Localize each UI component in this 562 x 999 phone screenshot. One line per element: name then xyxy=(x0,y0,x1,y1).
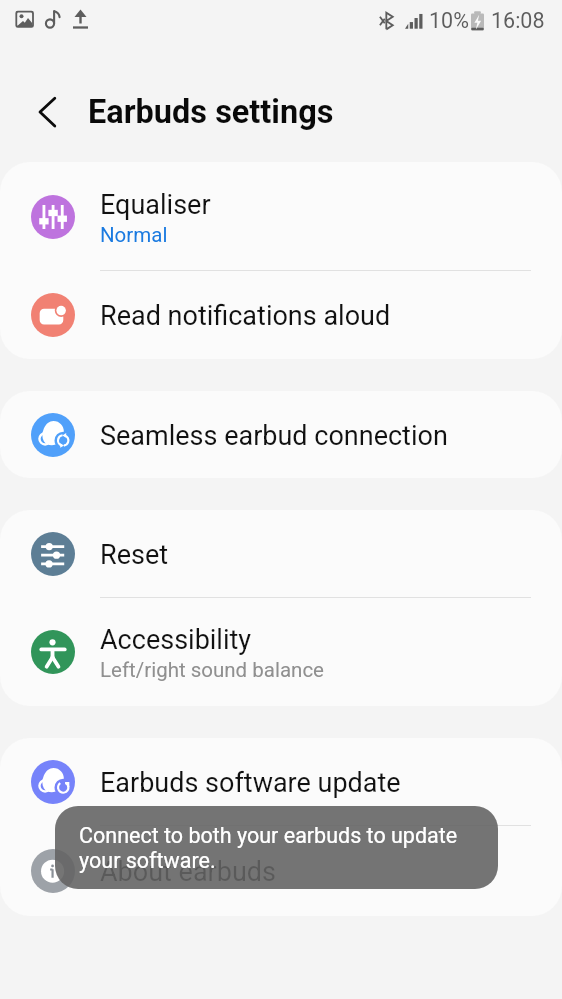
staticText: About earbuds xyxy=(100,856,276,888)
staticText: Earbuds software update xyxy=(100,767,401,799)
staticText: Normal xyxy=(100,223,168,247)
button[interactable]: Equaliser xyxy=(0,162,562,271)
staticText: Read notifications aloud xyxy=(100,300,391,332)
staticText: Connect to both your earbuds to update y… xyxy=(79,823,478,873)
button[interactable]: Seamless earbud connection xyxy=(0,391,562,478)
staticText: Accessibility xyxy=(100,624,252,656)
staticText: 16:08 xyxy=(491,8,545,33)
staticText: Left/right sound balance xyxy=(100,658,324,682)
button[interactable]: Reset xyxy=(0,510,562,598)
staticText: Seamless earbud connection xyxy=(100,420,448,452)
button[interactable]: About earbuds xyxy=(0,826,562,916)
button[interactable]: Navigate up xyxy=(32,93,70,131)
staticText: Equaliser xyxy=(100,189,211,221)
button[interactable]: Accessibility xyxy=(0,598,562,706)
staticText: 10% xyxy=(429,8,469,33)
button[interactable]: Earbuds software update xyxy=(0,738,562,826)
button[interactable]: Read notifications aloud xyxy=(0,271,562,359)
staticText: Earbuds settings xyxy=(88,93,334,131)
staticText: Reset xyxy=(100,539,169,571)
